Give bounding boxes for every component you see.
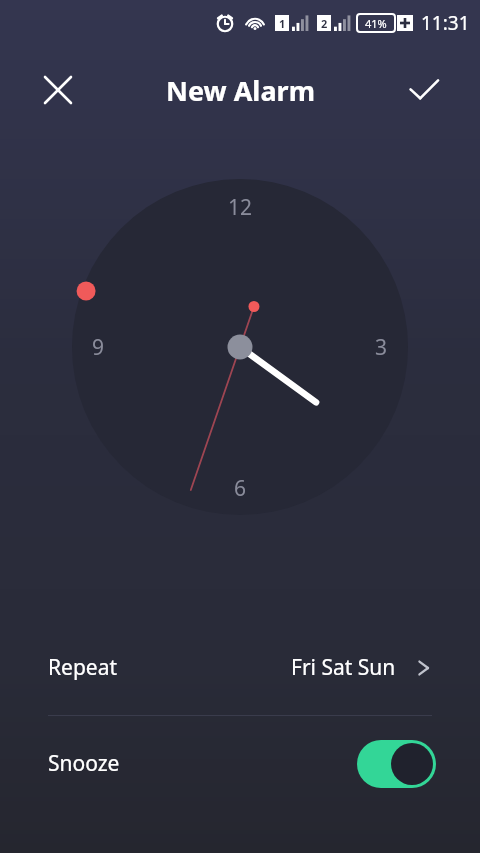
button[interactable]: Close <box>30 62 86 118</box>
staticText: 6 <box>234 474 247 503</box>
staticText: 41% <box>365 16 387 31</box>
button[interactable]: Snooze <box>0 716 480 811</box>
staticText: Fri Sat Sun <box>291 653 396 682</box>
staticText: 2 <box>321 16 328 31</box>
staticText: 11:31 <box>421 10 470 36</box>
staticText: New Alarm <box>166 72 315 109</box>
button[interactable]: Save alarm <box>396 62 452 118</box>
staticText: 3 <box>375 333 388 362</box>
button[interactable] <box>357 740 436 788</box>
staticText: 12 <box>228 193 253 222</box>
staticText: 1 <box>279 16 286 31</box>
staticText: 9 <box>92 333 105 362</box>
staticText: Snooze <box>48 749 120 778</box>
staticText: Repeat <box>48 653 118 682</box>
button[interactable]: Repeat <box>0 620 480 715</box>
